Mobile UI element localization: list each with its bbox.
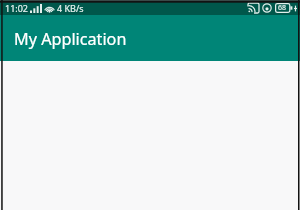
button[interactable]: My Application: [0, 15, 300, 61]
other: Alarm set: [262, 3, 272, 13]
staticText: My Application: [14, 28, 127, 50]
other: Battery 68 percent: [275, 3, 293, 13]
staticText: 68: [278, 3, 287, 13]
other: Mobile signal: [30, 4, 42, 13]
other: Charging: [294, 4, 297, 13]
other: Wi-Fi: [44, 4, 55, 13]
other: Screen cast: [248, 3, 259, 13]
staticText: 4 KB/s: [57, 2, 84, 14]
staticText: 11:02: [5, 2, 29, 14]
